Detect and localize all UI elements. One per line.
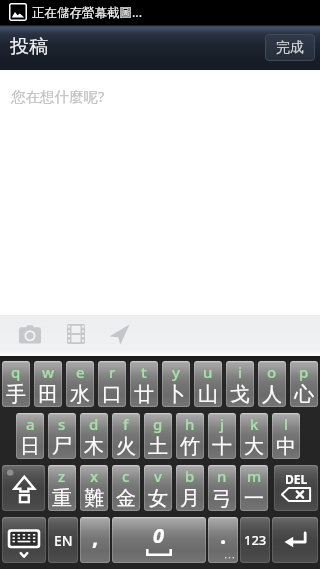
button[interactable]: Delete: [274, 465, 318, 511]
staticText: 金: [116, 486, 136, 511]
button[interactable]: 完成: [265, 34, 315, 61]
staticText: p: [299, 362, 309, 382]
staticText: o: [267, 362, 277, 382]
button[interactable]: e: [66, 361, 94, 407]
button[interactable]: 您在想什麼呢?: [11, 86, 105, 106]
button[interactable]: f: [112, 413, 140, 459]
staticText: d: [89, 414, 99, 434]
button[interactable]: m: [240, 465, 268, 511]
button[interactable]: w: [34, 361, 62, 407]
button[interactable]: Hide keyboard: [2, 517, 46, 563]
staticText: 一: [244, 486, 264, 511]
staticText: 手: [6, 382, 26, 407]
button[interactable]: .: [208, 517, 238, 563]
staticText: EN: [54, 531, 73, 550]
staticText: g: [153, 414, 163, 434]
button[interactable]: Shift: [2, 465, 45, 511]
button[interactable]: n: [208, 465, 236, 511]
staticText: f: [123, 414, 129, 434]
button[interactable]: Add location: [109, 320, 133, 344]
staticText: 口: [102, 382, 122, 407]
button[interactable]: v: [144, 465, 172, 511]
staticText: 木: [84, 434, 104, 459]
staticText: j: [220, 414, 225, 434]
button[interactable]: c: [112, 465, 140, 511]
staticText: 女: [148, 486, 168, 511]
staticText: 竹: [180, 434, 200, 459]
staticText: 日: [20, 434, 40, 459]
staticText: c: [122, 466, 130, 486]
staticText: b: [185, 466, 195, 486]
button[interactable]: a: [16, 413, 44, 459]
button[interactable]: Switch to English: [48, 517, 78, 563]
staticText: 山: [198, 382, 218, 407]
staticText: l: [284, 414, 289, 434]
staticText: y: [172, 362, 180, 382]
staticText: DEL: [285, 471, 308, 487]
staticText: w: [42, 362, 55, 382]
staticText: 123: [244, 531, 267, 549]
staticText: 戈: [230, 382, 250, 407]
staticText: s: [58, 414, 66, 434]
button[interactable]: ,: [80, 517, 110, 563]
staticText: z: [58, 466, 66, 486]
button[interactable]: Space: [112, 517, 206, 563]
button[interactable]: i: [226, 361, 254, 407]
button[interactable]: h: [176, 413, 204, 459]
button[interactable]: l: [272, 413, 300, 459]
staticText: 0: [153, 522, 165, 549]
button[interactable]: j: [208, 413, 236, 459]
staticText: 投稿: [10, 35, 48, 59]
staticText: m: [247, 466, 262, 486]
button[interactable]: t: [130, 361, 158, 407]
staticText: q: [11, 362, 21, 382]
staticText: 人: [262, 382, 282, 407]
staticText: 中: [276, 434, 296, 459]
staticText: 月: [180, 486, 200, 511]
button[interactable]: r: [98, 361, 126, 407]
button[interactable]: p: [290, 361, 318, 407]
staticText: i: [238, 362, 243, 382]
button[interactable]: Numbers: [240, 517, 270, 563]
staticText: v: [154, 466, 162, 486]
button[interactable]: Add photo: [19, 320, 43, 342]
staticText: n: [217, 466, 227, 486]
staticText: r: [109, 362, 116, 382]
button[interactable]: x: [80, 465, 108, 511]
button[interactable]: o: [258, 361, 286, 407]
staticText: 難: [84, 486, 104, 511]
button[interactable]: q: [2, 361, 30, 407]
button[interactable]: z: [48, 465, 76, 511]
button[interactable]: g: [144, 413, 172, 459]
staticText: 弓: [212, 486, 232, 511]
staticText: 廿: [134, 382, 154, 407]
staticText: 田: [38, 382, 58, 407]
staticText: 尸: [52, 434, 72, 459]
staticText: 十: [212, 434, 232, 459]
button[interactable]: s: [48, 413, 76, 459]
button[interactable]: Add video: [67, 320, 87, 342]
staticText: 卜: [166, 382, 186, 407]
staticText: 心: [294, 382, 314, 407]
button[interactable]: y: [162, 361, 190, 407]
staticText: 水: [70, 382, 90, 407]
staticText: .: [220, 520, 227, 550]
staticText: 重: [52, 486, 72, 511]
staticText: e: [76, 362, 85, 382]
staticText: ,: [92, 521, 99, 551]
staticText: k: [250, 414, 259, 434]
staticText: 火: [116, 434, 136, 459]
staticText: t: [141, 362, 147, 382]
button[interactable]: b: [176, 465, 204, 511]
staticText: 大: [244, 434, 264, 459]
staticText: 正在儲存螢幕截圖...: [32, 4, 143, 21]
staticText: x: [90, 466, 99, 486]
staticText: 土: [148, 434, 168, 459]
button[interactable]: u: [194, 361, 222, 407]
button[interactable]: k: [240, 413, 268, 459]
staticText: h: [185, 414, 195, 434]
staticText: u: [203, 362, 213, 382]
button[interactable]: d: [80, 413, 108, 459]
button[interactable]: Enter: [272, 517, 318, 563]
staticText: a: [26, 414, 35, 434]
